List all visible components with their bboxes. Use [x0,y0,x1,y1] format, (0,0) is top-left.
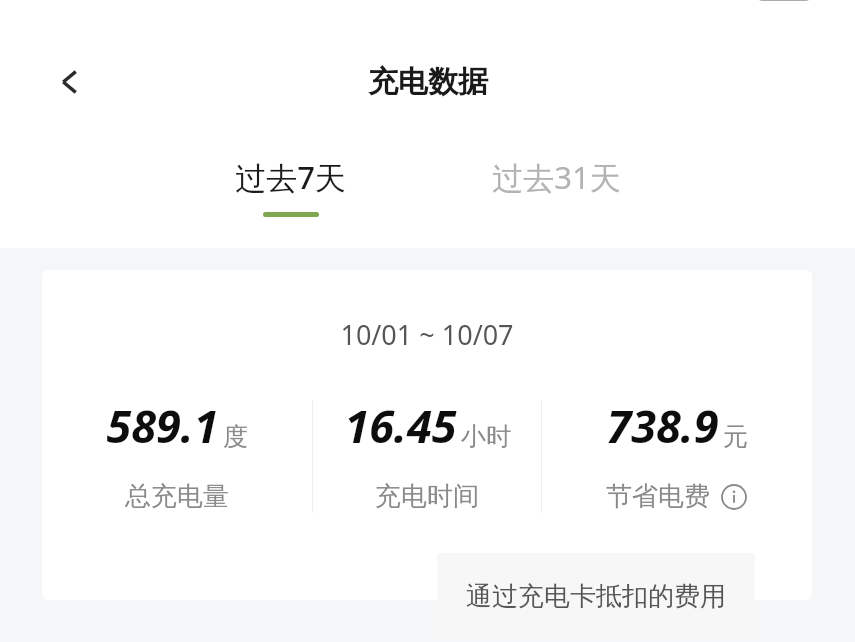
staticText: 通过充电卡抵扣的费用 [466,580,726,613]
staticText: 度 [223,421,248,452]
staticText: 充电时间 [375,480,479,513]
staticText: 总充电量 [125,480,229,513]
staticText: 16.45 [344,395,457,456]
staticText: 元 [723,421,748,452]
button[interactable]: 16.45 [313,395,541,513]
staticText: 过去31天 [492,156,621,198]
button[interactable]: 通过充电卡抵扣的费用 [437,553,755,639]
staticText: 589.1 [106,395,219,456]
button[interactable]: Back [44,56,96,108]
staticText: 节省电费 [606,480,710,513]
button[interactable]: 过去7天 [225,150,356,223]
button[interactable]: 589.1 [42,395,312,513]
staticText: 过去7天 [235,156,346,198]
button[interactable]: 10/01 ~ 10/07 [42,270,812,600]
button[interactable]: 过去31天 [482,150,631,218]
staticText: 充电数据 [368,63,488,101]
staticText: 10/01 ~ 10/07 [340,316,514,353]
button[interactable]: 738.9 [542,395,812,513]
button[interactable]: Info [720,483,748,511]
staticText: 738.9 [606,395,719,456]
staticText: 小时 [461,421,511,452]
